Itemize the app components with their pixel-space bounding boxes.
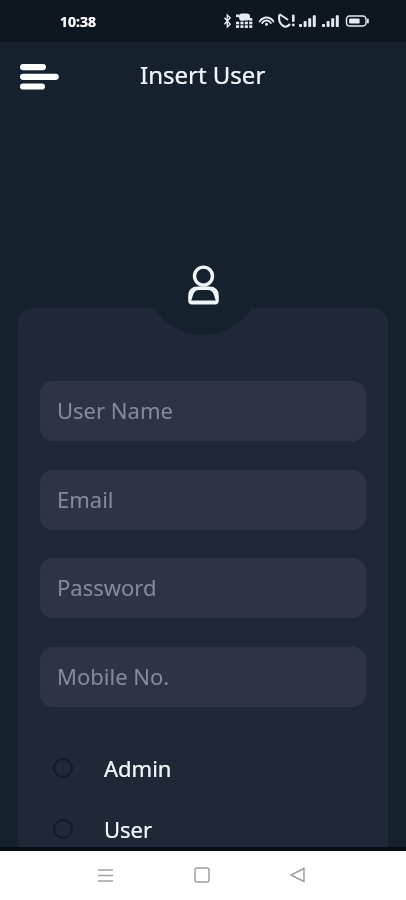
- button[interactable]: Email: [40, 470, 366, 530]
- button[interactable]: Password: [40, 558, 366, 618]
- staticText: Email: [57, 484, 114, 514]
- button[interactable]: Recent apps: [81, 851, 129, 899]
- staticText: User: [104, 814, 153, 844]
- staticText: 10:38: [60, 12, 96, 31]
- button[interactable]: User: [40, 802, 366, 856]
- button[interactable]: Admin: [40, 741, 366, 795]
- staticText: User Name: [57, 395, 173, 425]
- button[interactable]: Back: [273, 851, 321, 899]
- staticText: Password: [57, 572, 157, 602]
- staticText: Insert User: [140, 58, 266, 91]
- button[interactable]: Menu: [8, 49, 62, 99]
- button[interactable]: Mobile No.: [40, 647, 366, 707]
- button[interactable]: User Name: [40, 381, 366, 441]
- staticText: Mobile No.: [57, 661, 170, 691]
- button[interactable]: Home: [178, 851, 226, 899]
- staticText: Admin: [104, 753, 172, 783]
